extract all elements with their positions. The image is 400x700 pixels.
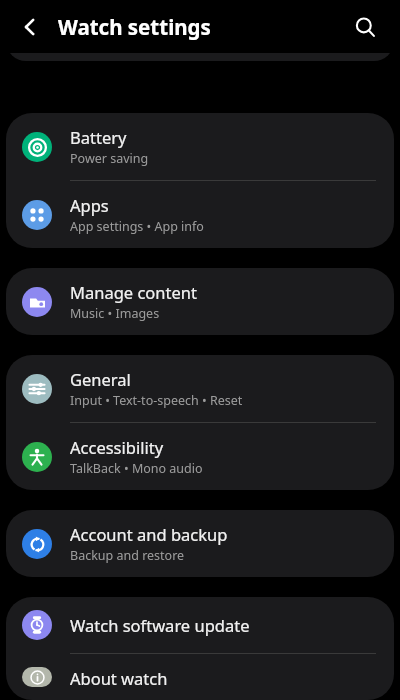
button[interactable]: Search	[348, 10, 382, 44]
button[interactable]: Battery	[6, 113, 394, 180]
staticText: Backup and restore	[70, 547, 185, 564]
button[interactable]: About watch	[6, 654, 394, 700]
button[interactable]: Apps	[6, 181, 394, 248]
staticText: Account and backup	[70, 523, 228, 545]
staticText: Battery	[70, 126, 127, 148]
button[interactable]: Accessibility	[6, 423, 394, 490]
button[interactable]: Account and backup	[6, 510, 394, 577]
staticText: Watch settings	[58, 13, 211, 41]
button[interactable]: Manage content	[6, 268, 394, 335]
staticText: Power saving	[70, 150, 149, 167]
staticText: App settings • App info	[70, 218, 204, 235]
button[interactable]: General	[6, 355, 394, 422]
staticText: Apps	[70, 194, 109, 216]
staticText: Accessibility	[70, 436, 164, 458]
staticText: Input • Text-to-speech • Reset	[70, 392, 243, 409]
button[interactable]: Watch software update	[6, 597, 394, 653]
staticText: Music • Images	[70, 305, 160, 322]
staticText: Watch software update	[70, 614, 250, 636]
button[interactable]: Back	[12, 9, 48, 45]
staticText: About watch	[70, 667, 168, 687]
staticText: General	[70, 368, 131, 390]
staticText: Manage content	[70, 281, 197, 303]
staticText: TalkBack • Mono audio	[70, 460, 203, 477]
button[interactable]: Advanced features	[6, 53, 394, 61]
